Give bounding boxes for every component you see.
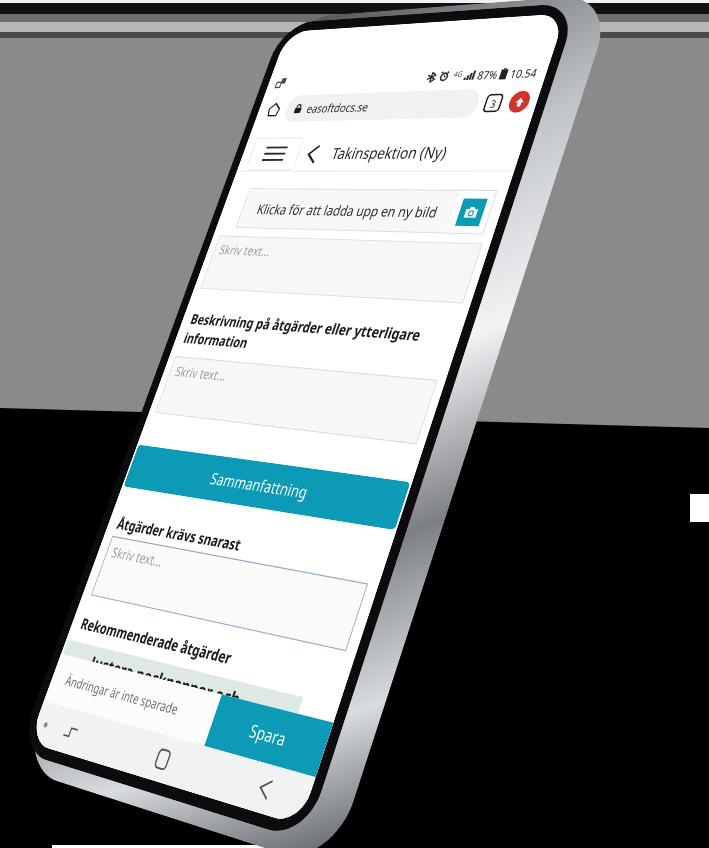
- button[interactable]: Back: [244, 766, 285, 812]
- staticText: Skriv text...: [173, 362, 229, 385]
- button[interactable]: Sammanfattning: [123, 445, 411, 530]
- button[interactable]: Skriv text...: [91, 536, 368, 651]
- staticText: Rekommenderade åtgärder: [78, 613, 235, 668]
- button[interactable]: Tabs: [482, 93, 505, 113]
- staticText: Takinspektion (Ny): [329, 141, 451, 163]
- staticText: Skriv text...: [109, 543, 166, 571]
- staticText: 4G: [452, 68, 465, 79]
- staticText: Justera nockpannor och: [87, 650, 244, 712]
- staticText: Beskrivning på åtgärder eller ytterligar…: [181, 309, 453, 369]
- staticText: 3: [488, 96, 499, 111]
- staticText: 87%: [475, 67, 500, 82]
- button[interactable]: Update available: [506, 90, 533, 113]
- button[interactable]: Skriv text...: [200, 235, 483, 303]
- staticText: easoftdocs.se: [304, 99, 372, 116]
- button[interactable]: Recent apps: [53, 711, 88, 752]
- staticText: Klicka för att ladda upp en ny bild: [255, 200, 441, 221]
- button[interactable]: Spara: [204, 694, 333, 777]
- staticText: Åtgärder krävs snarast: [115, 513, 245, 555]
- button[interactable]: Home: [144, 737, 182, 781]
- staticText: Ändringar är inte sparade: [63, 671, 181, 719]
- button[interactable]: Klicka för att ladda upp en ny bild: [235, 188, 498, 234]
- staticText: Skriv text...: [217, 241, 274, 260]
- staticText: 10.54: [508, 65, 540, 81]
- staticText: Sammanfattning: [207, 467, 311, 504]
- button[interactable]: easoftdocs.se: [281, 88, 483, 122]
- button[interactable]: Home: [261, 98, 287, 121]
- button[interactable]: Menu: [245, 137, 305, 170]
- button[interactable]: Back: [300, 143, 325, 165]
- button[interactable]: Justera nockpannor och: [57, 639, 303, 731]
- button[interactable]: Skriv text...: [155, 356, 438, 444]
- staticText: Spara: [246, 718, 290, 752]
